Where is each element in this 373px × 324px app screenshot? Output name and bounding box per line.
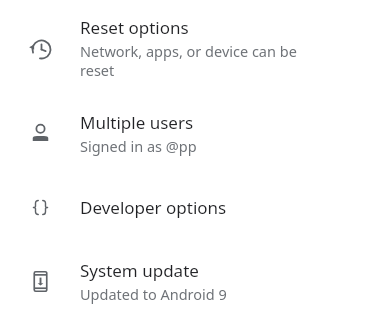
other: Developer options bbox=[0, 171, 80, 243]
button[interactable]: Developer options bbox=[0, 171, 373, 243]
staticText: Developer options bbox=[80, 196, 227, 219]
other: Multiple users bbox=[0, 95, 80, 171]
button[interactable]: Multiple users bbox=[0, 95, 373, 171]
other: System update bbox=[0, 243, 80, 319]
staticText: Network, apps, or device can be reset bbox=[80, 41, 297, 80]
staticText: Updated to Android 9 bbox=[80, 284, 227, 304]
staticText: Reset options bbox=[80, 16, 189, 39]
button[interactable]: System update bbox=[0, 243, 373, 319]
staticText: Multiple users bbox=[80, 111, 194, 134]
other: Reset options bbox=[0, 1, 80, 95]
staticText: Signed in as @pp bbox=[80, 136, 197, 156]
button[interactable]: Reset options bbox=[0, 1, 373, 95]
staticText: System update bbox=[80, 259, 199, 282]
